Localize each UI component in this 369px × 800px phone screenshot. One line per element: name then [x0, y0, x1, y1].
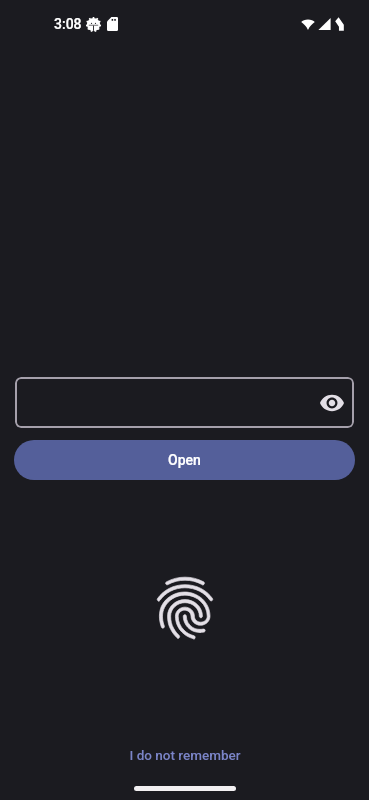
button[interactable]: Unlock with fingerprint [143, 566, 227, 650]
staticText: 3:08 [54, 16, 82, 32]
staticText: I do not remember [129, 747, 241, 763]
button[interactable]: Show password [15, 377, 354, 428]
staticText: Open [168, 452, 201, 468]
button[interactable]: Show password [314, 385, 350, 421]
button[interactable]: I do not remember [119, 742, 251, 768]
button[interactable]: Open [14, 440, 355, 480]
